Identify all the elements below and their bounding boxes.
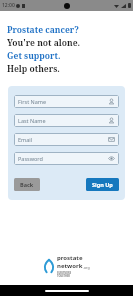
button[interactable]: Sign Up [86, 178, 119, 191]
staticText: Back [20, 181, 34, 188]
button[interactable]: First Name [14, 95, 119, 108]
button[interactable]: Back [14, 178, 40, 191]
other: Person [108, 117, 115, 124]
other: Email [108, 136, 115, 143]
button[interactable]: Password [14, 152, 119, 165]
other: Person [108, 98, 115, 105]
staticText: Password [18, 155, 108, 162]
other: Prostate Network logo [43, 258, 55, 273]
staticText: .org [83, 265, 90, 270]
staticText: Help others. [7, 63, 60, 75]
staticText: Last Name [18, 117, 108, 124]
staticText: prostate [57, 254, 83, 262]
staticText: Prostate cancer? [7, 24, 79, 36]
staticText: Email [18, 136, 108, 143]
staticText: Sign Up [92, 181, 113, 188]
staticText: You're not alone. [7, 37, 81, 49]
staticText: network [57, 262, 83, 270]
button[interactable]: Last Name [14, 114, 119, 127]
other: Show password [108, 155, 115, 162]
staticText: First Name [18, 98, 108, 105]
staticText: 12:00 [2, 2, 15, 9]
button[interactable]: Get support. [7, 50, 61, 62]
button[interactable]: Email [14, 133, 119, 146]
staticText: SURVIVORS TOGETHER [57, 271, 72, 277]
